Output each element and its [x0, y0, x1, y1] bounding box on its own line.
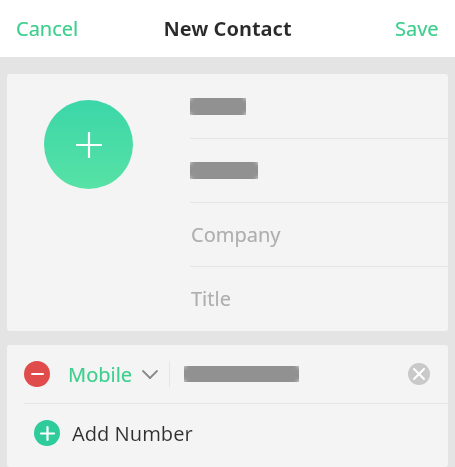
button[interactable]: Add photo [44, 100, 133, 189]
staticText: Cancel [16, 15, 79, 42]
staticText: Title [191, 285, 231, 312]
staticText: Save [395, 15, 439, 42]
button[interactable]: Save [385, 7, 449, 50]
staticText: Add Number [72, 420, 193, 447]
button[interactable]: Remove number [7, 345, 448, 403]
button[interactable]: Clear number [408, 363, 430, 385]
staticText: Company [191, 221, 281, 248]
button[interactable]: Title [183, 267, 448, 329]
button[interactable]: Company [183, 203, 448, 266]
staticText: Mobile [68, 361, 133, 388]
staticText: New Contact [163, 15, 292, 42]
button[interactable] [183, 139, 448, 202]
button[interactable] [183, 74, 448, 138]
button[interactable]: Cancel [6, 7, 89, 50]
button[interactable]: Remove number [24, 361, 50, 387]
button[interactable]: Add Number [7, 404, 448, 462]
